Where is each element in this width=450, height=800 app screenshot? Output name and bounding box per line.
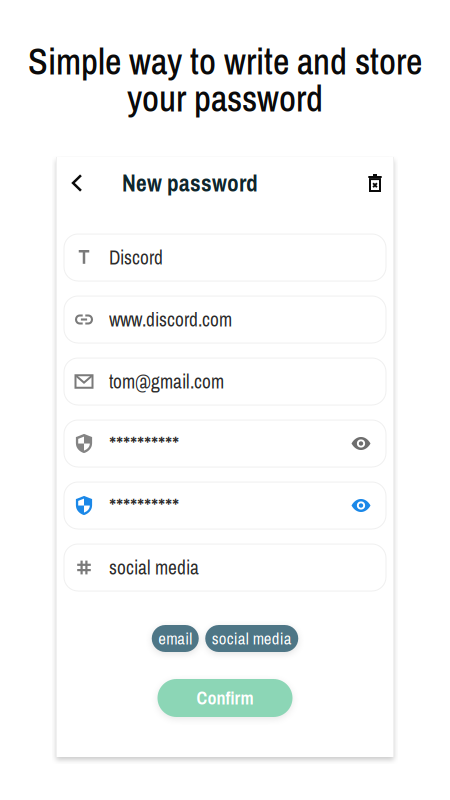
staticText: New password xyxy=(122,167,258,199)
staticText: email xyxy=(158,627,192,650)
button[interactable]: Show password xyxy=(347,429,375,457)
button[interactable]: email xyxy=(152,625,199,652)
staticText: ********** xyxy=(109,490,179,521)
button[interactable]: Hide password xyxy=(347,491,375,519)
staticText: Confirm xyxy=(196,686,253,710)
staticText: tom@gmail.com xyxy=(109,368,224,394)
staticText: social media xyxy=(109,554,199,580)
staticText: www.discord.com xyxy=(109,306,232,332)
staticText: Discord xyxy=(109,244,163,270)
button[interactable]: Back xyxy=(59,165,95,201)
staticText: Simple way to write and store xyxy=(28,37,422,86)
staticText: your password xyxy=(127,74,323,123)
button[interactable]: social media xyxy=(205,625,298,652)
button[interactable]: Delete xyxy=(357,165,393,201)
button[interactable]: Confirm xyxy=(157,679,292,717)
staticText: social media xyxy=(212,627,292,650)
staticText: ********** xyxy=(109,428,179,459)
